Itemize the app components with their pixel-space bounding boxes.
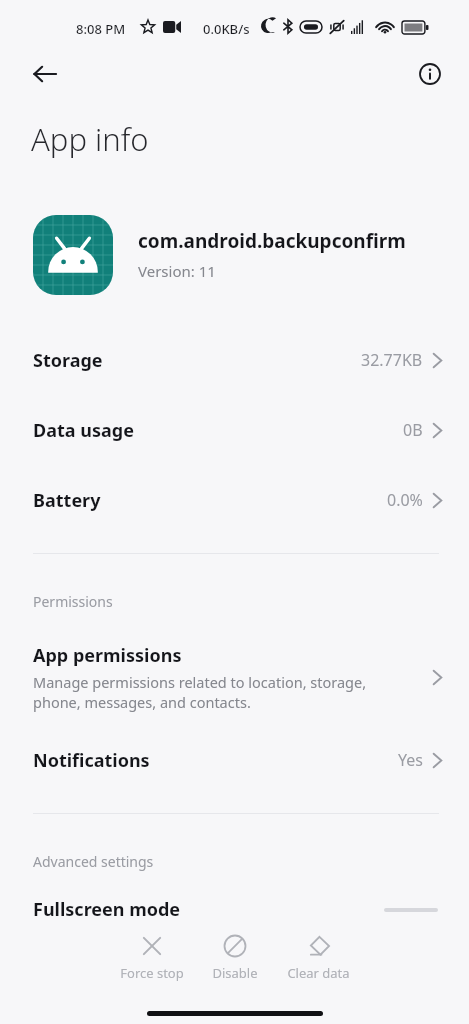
button[interactable]: App details	[407, 51, 453, 97]
staticText: Battery	[33, 488, 101, 513]
staticText: 0B	[403, 419, 423, 441]
button[interactable]: Force stop	[112, 934, 192, 990]
staticText: Disable	[212, 964, 258, 982]
staticText: Fullscreen mode	[33, 897, 181, 922]
staticText: Version: 11	[138, 261, 216, 281]
staticText: Permissions	[33, 592, 113, 611]
button[interactable]: Fullscreen mode	[0, 884, 469, 936]
staticText: 32.77KB	[361, 349, 423, 371]
staticText: Clear data	[287, 964, 350, 982]
staticText: 8:08 PM	[76, 20, 126, 38]
staticText: Notifications	[33, 748, 150, 773]
staticText: Advanced settings	[33, 852, 154, 871]
button[interactable]: Back	[22, 51, 68, 97]
button[interactable]: Notifications	[0, 734, 469, 786]
staticText: Force stop	[120, 964, 184, 982]
staticText: Manage permissions related to location, …	[33, 672, 367, 712]
staticText: com.android.backupconfirm	[138, 228, 406, 254]
staticText: App permissions	[33, 643, 182, 668]
button[interactable]: Disable	[195, 934, 275, 990]
staticText: App info	[31, 118, 149, 160]
staticText: Storage	[33, 348, 103, 373]
button[interactable]: Storage	[0, 334, 469, 386]
staticText: Data usage	[33, 418, 134, 443]
button[interactable]: Battery	[0, 474, 469, 526]
staticText: 0.0%	[387, 489, 423, 511]
button[interactable]: Clear data	[278, 934, 358, 990]
button[interactable]: Data usage	[0, 404, 469, 456]
staticText: 0.0KB/s	[203, 20, 250, 38]
button[interactable]: App permissions	[0, 628, 469, 726]
staticText: Yes	[398, 749, 423, 771]
